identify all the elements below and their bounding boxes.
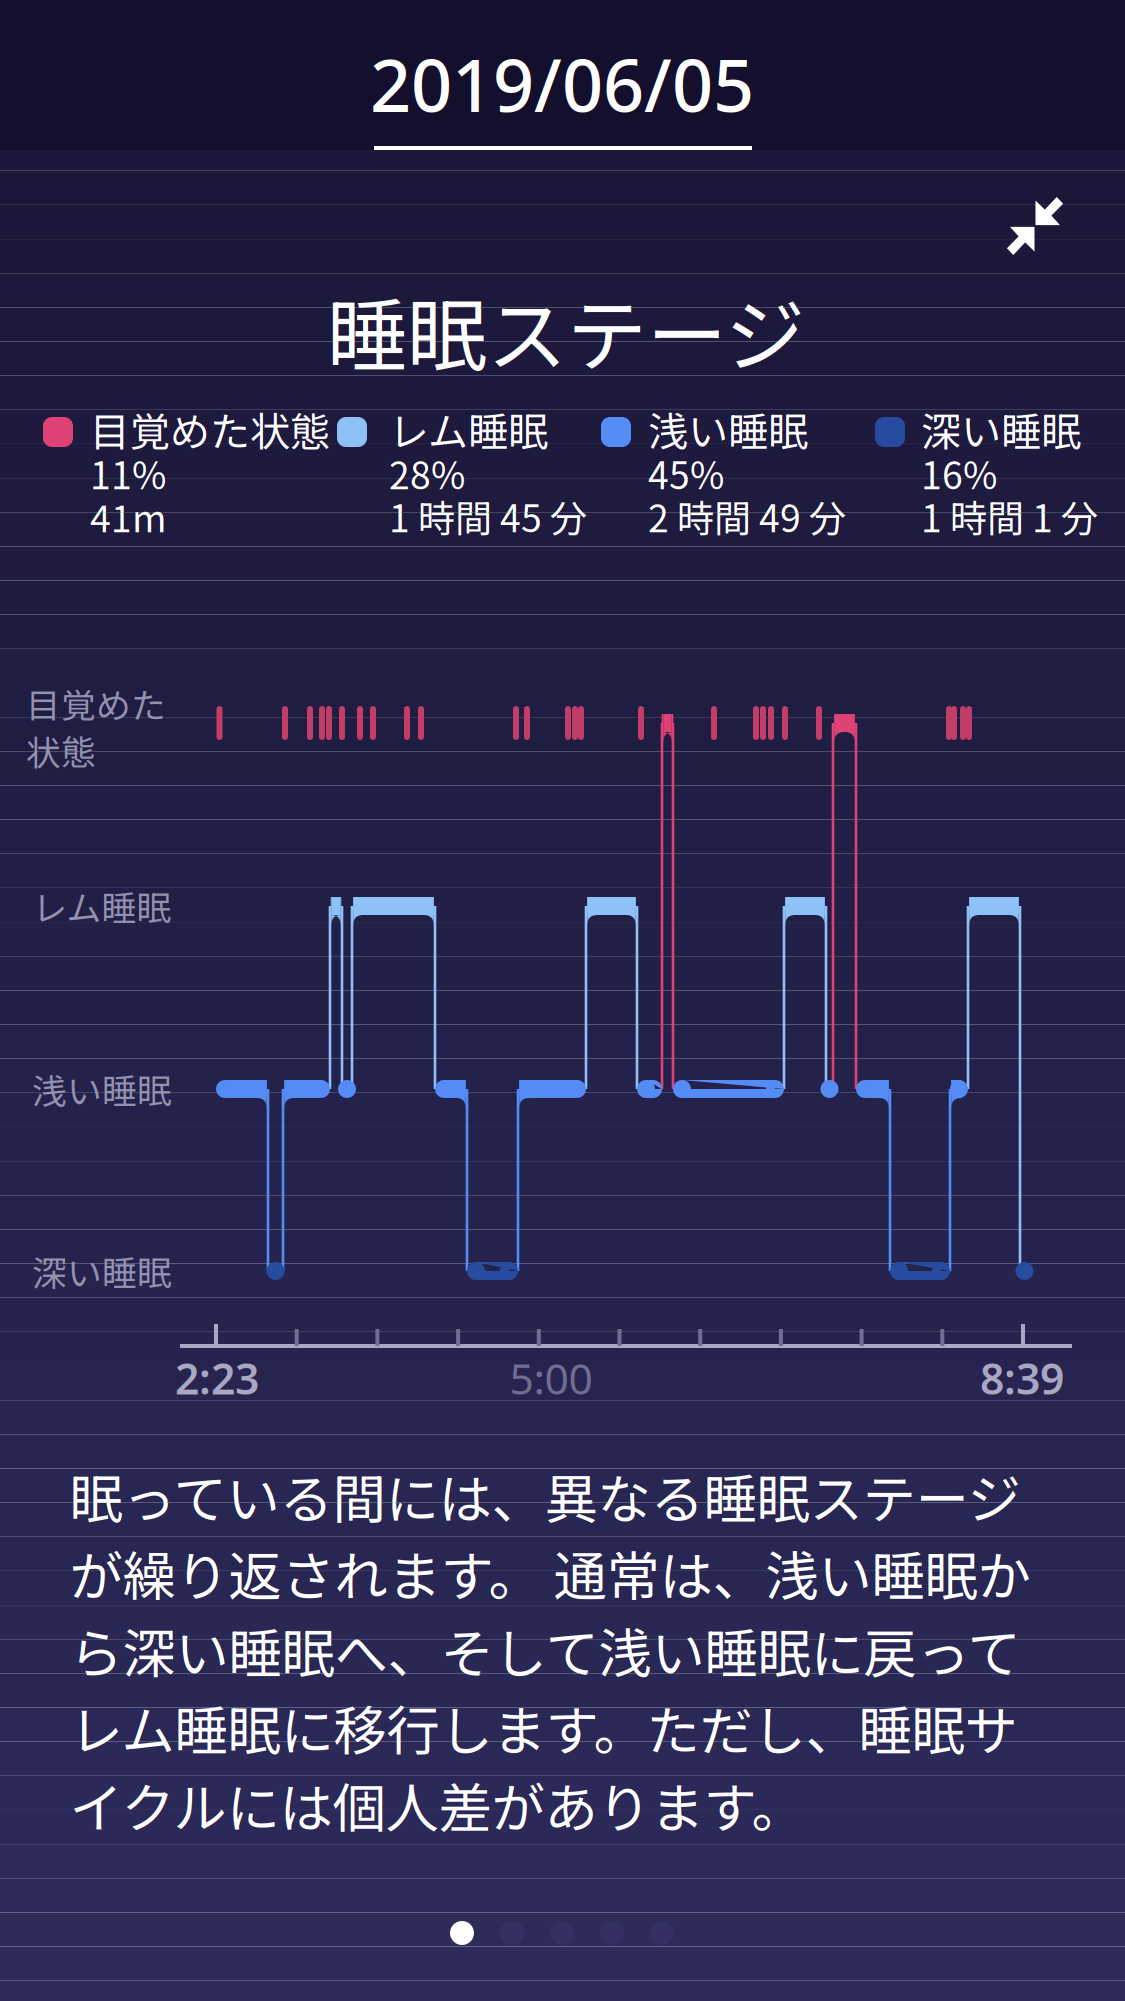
staticText: 睡眠ステージ [327,272,805,388]
staticText: 浅い睡眠 [32,1064,172,1114]
staticText: レム睡眠 [32,881,171,931]
staticText: 16% [921,446,997,500]
staticText: 1 時間 1 分 [921,489,1098,543]
staticText: 目覚めた [26,678,166,729]
staticText: 2 時間 49 分 [648,489,846,543]
staticText: 浅い睡眠 [648,400,808,458]
staticText: 2019/06/05 [370,36,754,132]
staticText: 目覚めた状態 [90,400,330,458]
staticText: レム睡眠 [389,400,548,458]
staticText: 41m [90,489,167,543]
staticText: 眠っている間には、異なる睡眠ステージが繰り返されます。 通常は、浅い睡眠から深い… [69,1457,1030,1843]
staticText: 5:00 [509,1350,592,1406]
staticText: 45% [648,446,724,500]
button[interactable]: Collapse [990,181,1080,271]
staticText: 11% [90,446,166,500]
staticText: 2:23 [175,1350,259,1406]
staticText: 1 時間 45 分 [389,489,587,543]
staticText: 深い睡眠 [921,400,1081,458]
staticText: 状態 [26,725,96,776]
staticText: 28% [389,446,465,500]
staticText: 8:39 [980,1350,1064,1406]
staticText: 深い睡眠 [32,1246,172,1296]
